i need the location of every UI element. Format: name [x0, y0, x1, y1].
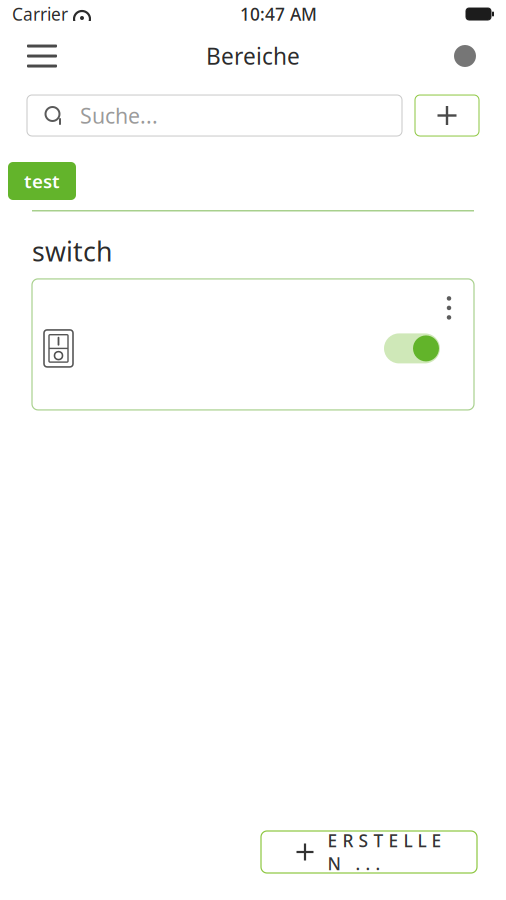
button[interactable]: Toggle switch	[384, 333, 440, 363]
button[interactable]: test	[8, 162, 76, 200]
staticText: Bereiche	[206, 41, 300, 71]
staticText: E R S T E L L E N . . .	[327, 829, 441, 875]
staticText: test	[24, 169, 60, 193]
button[interactable]: E R S T E L L E N . . .	[261, 831, 477, 873]
button[interactable]: Menu	[19, 34, 65, 78]
staticText: Carrier	[12, 2, 68, 25]
staticText: Suche...	[80, 101, 158, 130]
staticText: switch	[32, 233, 112, 269]
button[interactable]: Account	[443, 34, 487, 78]
button[interactable]: Suche...	[27, 95, 402, 136]
button[interactable]: More options	[432, 289, 466, 327]
staticText: 10:47 AM	[240, 2, 317, 25]
button[interactable]: Add	[415, 95, 479, 136]
